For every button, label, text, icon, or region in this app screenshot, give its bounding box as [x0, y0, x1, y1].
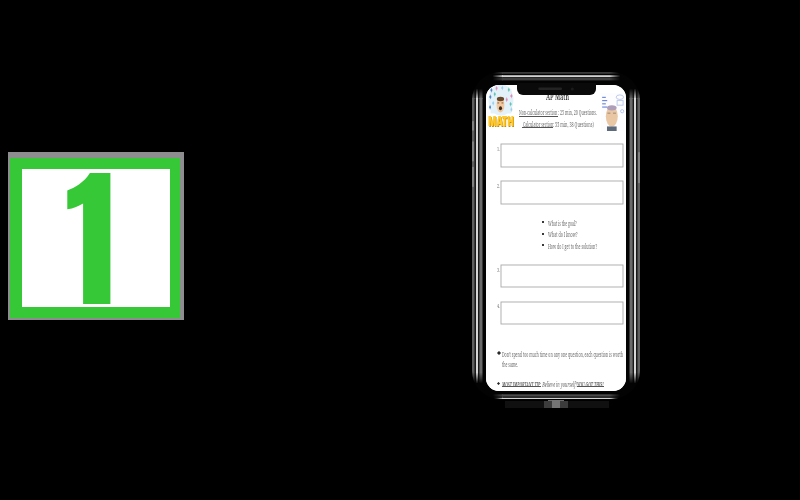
button[interactable]: Answer field 4	[501, 302, 623, 324]
button[interactable]: Answer field 2	[501, 181, 623, 204]
button[interactable]: Answer field 3	[501, 265, 623, 287]
button[interactable]: Answer field 1	[501, 144, 623, 167]
button[interactable]: Step one	[10, 158, 180, 318]
